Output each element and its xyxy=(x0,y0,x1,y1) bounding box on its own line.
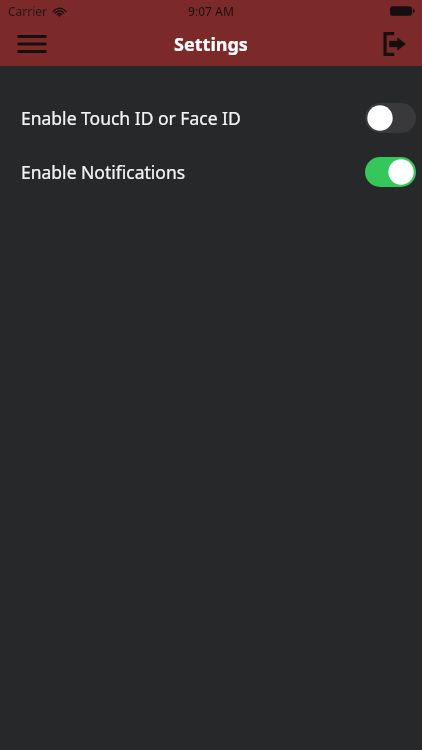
button[interactable]: Enable Notifications xyxy=(0,156,422,188)
button[interactable]: Menu xyxy=(12,24,52,64)
button[interactable]: Log out xyxy=(374,24,414,64)
button[interactable]: Off xyxy=(365,103,416,133)
staticText: Enable Notifications xyxy=(21,160,186,184)
staticText: Enable Touch ID or Face ID xyxy=(21,106,241,130)
button[interactable]: On xyxy=(365,157,416,187)
staticText: Settings xyxy=(174,32,248,57)
button[interactable]: Enable Touch ID or Face ID xyxy=(0,102,422,134)
staticText: Carrier xyxy=(8,3,48,19)
staticText: 9:07 AM xyxy=(188,3,234,19)
